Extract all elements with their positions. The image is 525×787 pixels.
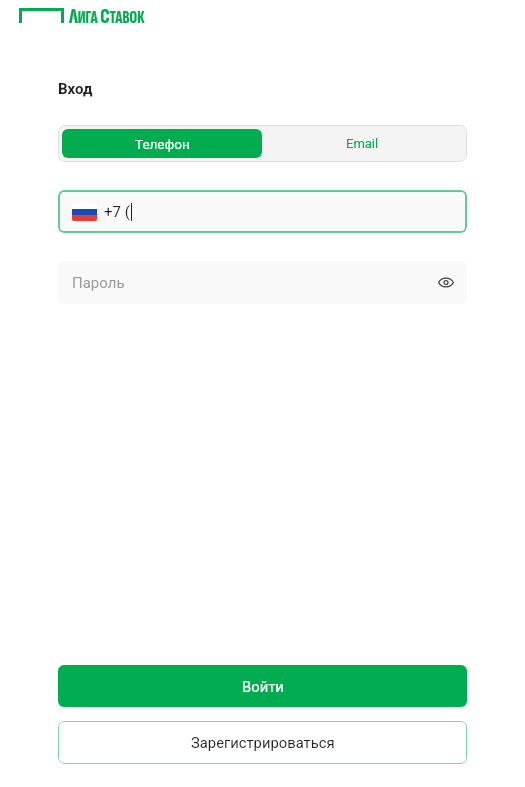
staticText: ЛИГА СТАВОК: [69, 4, 145, 29]
staticText: Телефон: [135, 136, 190, 152]
staticText: Зарегистрироваться: [191, 734, 335, 751]
button[interactable]: Зарегистрироваться: [58, 721, 467, 764]
button[interactable]: Показать пароль: [425, 261, 467, 304]
button[interactable]: +7 (: [58, 190, 467, 233]
staticText: +7 (: [104, 203, 130, 221]
staticText: Пароль: [72, 274, 125, 292]
button[interactable]: Войти: [58, 665, 467, 707]
button[interactable]: Телефон: [62, 129, 262, 158]
staticText: Email: [346, 136, 379, 151]
button[interactable]: Пароль: [58, 261, 467, 304]
staticText: Войти: [242, 678, 284, 695]
button[interactable]: Email: [262, 129, 463, 158]
staticText: Вход: [58, 80, 93, 98]
